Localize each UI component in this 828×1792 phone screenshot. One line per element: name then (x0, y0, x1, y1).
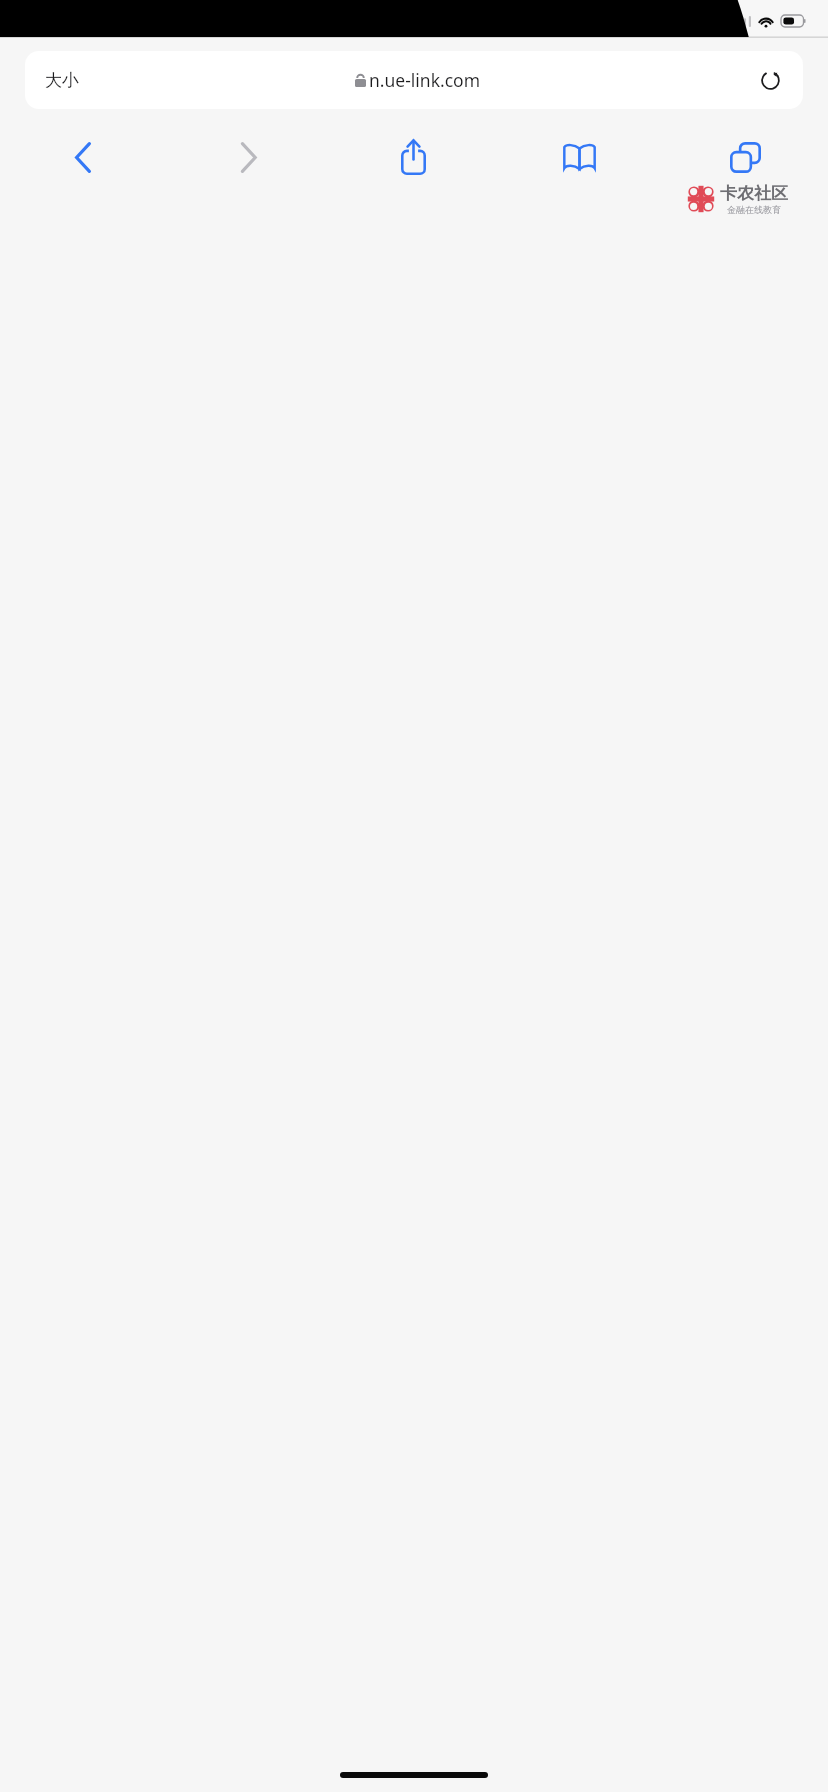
button[interactable]: Tabs (662, 131, 828, 183)
button[interactable]: Forward (165, 131, 330, 183)
button[interactable]: Share (330, 131, 496, 183)
button[interactable]: Reload (757, 67, 783, 93)
staticText: 金融在线教育 (727, 204, 781, 215)
staticText: 卡农社区 (720, 183, 788, 204)
button[interactable]: Back (0, 131, 165, 183)
staticText: 大小 (45, 70, 79, 91)
button[interactable]: 大小 (25, 51, 803, 109)
button[interactable]: Bookmarks (496, 131, 662, 183)
staticText: n.ue-link.com (369, 68, 481, 92)
